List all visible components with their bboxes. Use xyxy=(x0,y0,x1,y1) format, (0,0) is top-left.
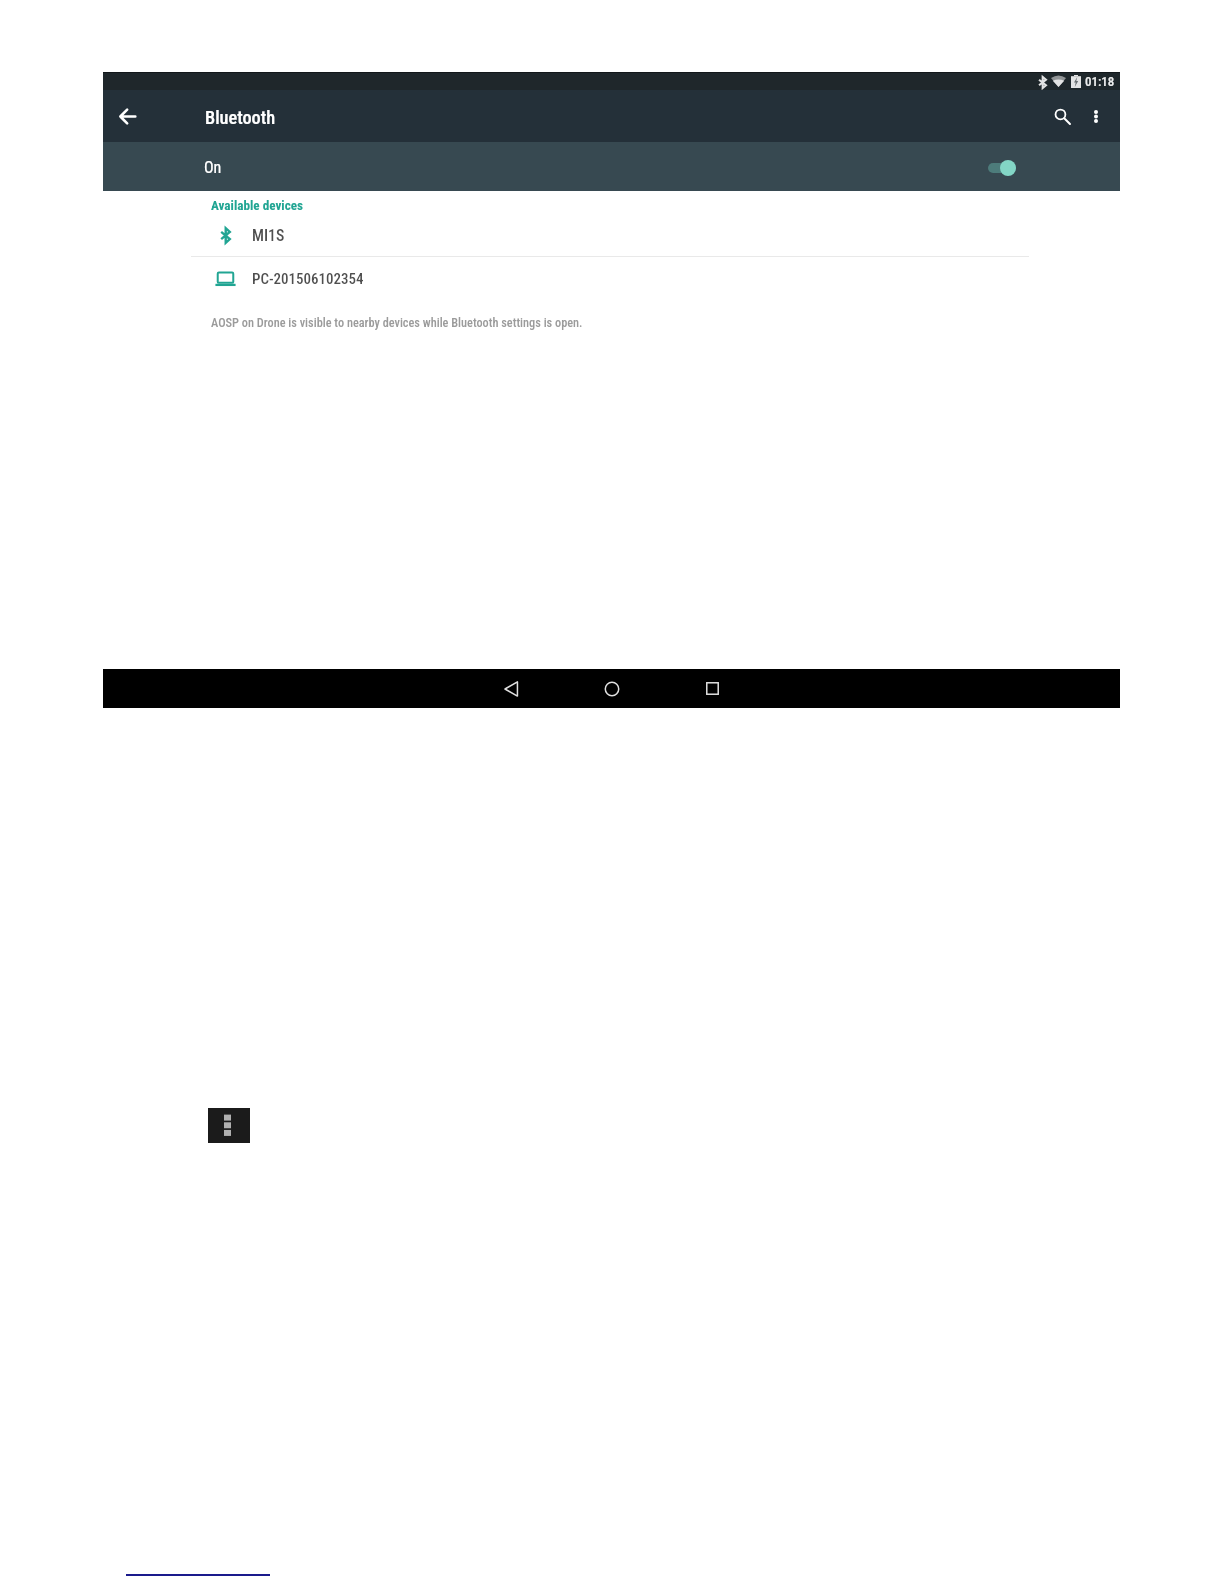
staticText: Bluetooth xyxy=(205,107,276,128)
staticText: AOSP on Drone is visible to nearby devic… xyxy=(211,316,583,330)
button[interactable]: On xyxy=(103,142,1120,191)
button[interactable]: More options xyxy=(208,1108,250,1143)
staticText: Available devices xyxy=(211,198,304,213)
button[interactable]: Home xyxy=(587,669,637,708)
button[interactable]: Back xyxy=(487,669,537,708)
button[interactable]: MI1S xyxy=(103,217,1120,253)
staticText: 01:18 xyxy=(1085,74,1115,89)
button[interactable]: Recent apps xyxy=(687,669,737,708)
button[interactable]: Navigate up xyxy=(108,97,146,135)
button[interactable]: More options xyxy=(1077,97,1115,135)
staticText: MI1S xyxy=(252,226,285,245)
button[interactable]: PC-201506102354 xyxy=(103,258,1120,300)
button[interactable]: Search xyxy=(1043,97,1081,135)
staticText: PC-201506102354 xyxy=(252,270,364,288)
staticText: On xyxy=(204,158,222,177)
